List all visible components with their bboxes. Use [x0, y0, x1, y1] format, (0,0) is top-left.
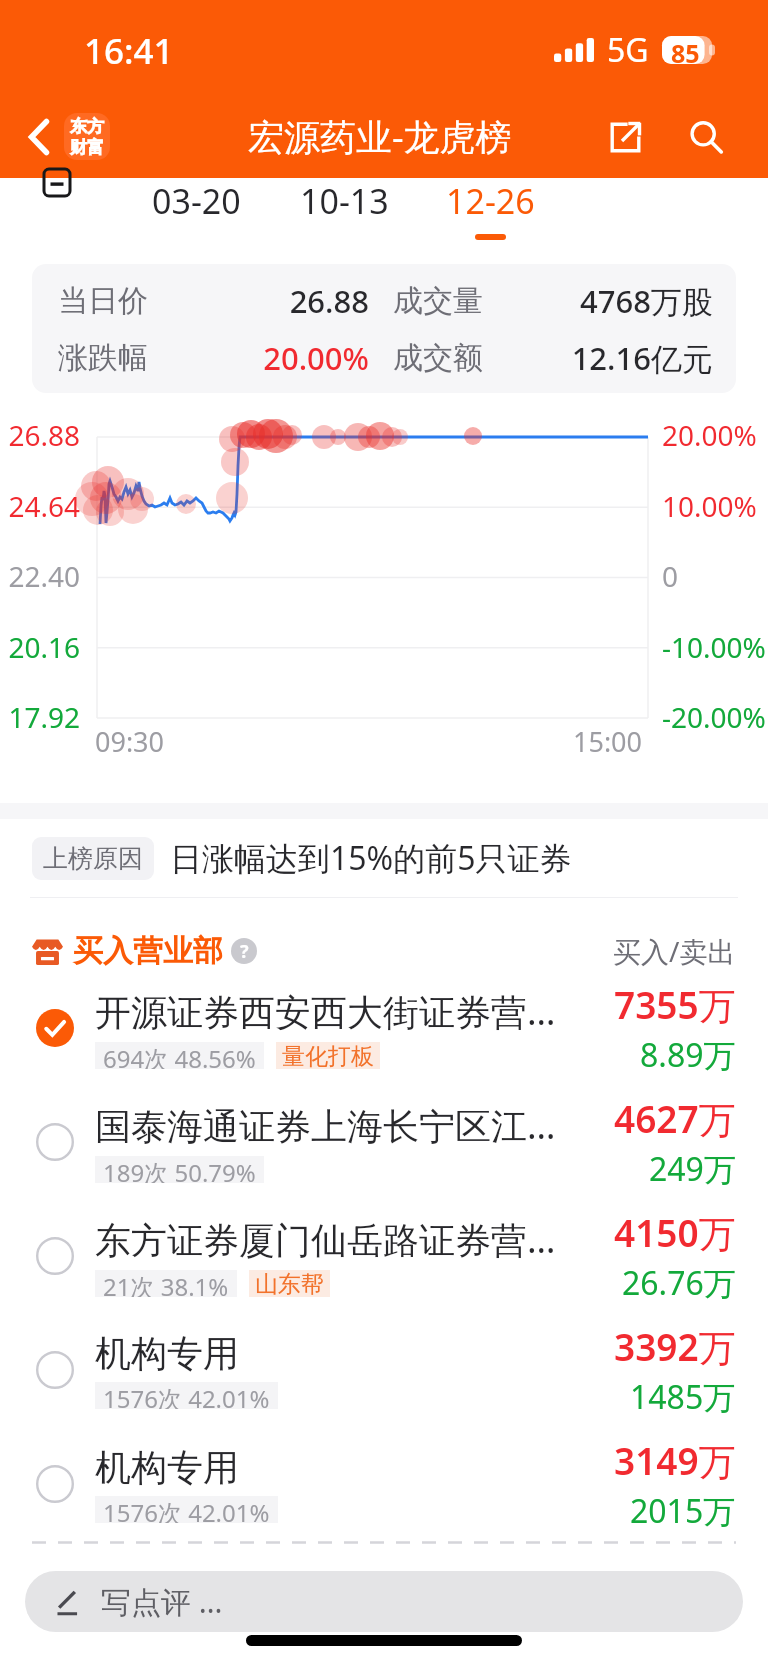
- staticText: 26.88: [148, 280, 369, 322]
- staticText: 24.64: [0, 487, 80, 525]
- button[interactable]: 03-20: [130, 178, 262, 258]
- staticText: 量化打板: [282, 1042, 374, 1069]
- staticText: 10.00%: [662, 487, 757, 525]
- button[interactable]: 东方证券厦门仙岳路证券营…: [0, 1199, 768, 1313]
- staticText: 成交额: [393, 339, 483, 377]
- staticText: 国泰海通证券上海长宁区江…: [95, 1101, 556, 1150]
- staticText: 买入/卖出: [613, 932, 736, 970]
- staticText: 买入营业部: [73, 932, 223, 970]
- staticText: 开源证券西安西大街证券营…: [95, 987, 556, 1036]
- staticText: 10-13: [300, 178, 389, 224]
- button[interactable]: 12-26: [424, 178, 556, 258]
- staticText: 涨跌幅: [58, 339, 148, 377]
- staticText: 17.92: [0, 698, 80, 736]
- staticText: 21次 38.1%: [103, 1270, 229, 1297]
- button[interactable]: East Money: [64, 113, 110, 160]
- staticText: 3392万: [614, 1321, 736, 1372]
- staticText: 1485万: [630, 1375, 736, 1419]
- staticText: 上榜原因: [43, 843, 143, 874]
- staticText: 宏源药业-龙虎榜: [248, 112, 512, 161]
- staticText: 20.00%: [148, 337, 369, 379]
- staticText: -10.00%: [662, 628, 766, 666]
- staticText: -20.00%: [662, 698, 766, 736]
- staticText: 4627万: [614, 1093, 736, 1144]
- staticText: 山东帮: [255, 1270, 324, 1297]
- staticText: 财富: [70, 137, 104, 158]
- staticText: 22.40: [0, 557, 80, 595]
- staticText: 8.89万: [640, 1033, 736, 1077]
- staticText: ?: [240, 939, 249, 964]
- staticText: 1576次 42.01%: [103, 1496, 270, 1523]
- staticText: 4150万: [614, 1207, 736, 1258]
- button[interactable]: Help: [231, 938, 257, 964]
- button[interactable]: Search: [675, 106, 737, 168]
- staticText: 20.16: [0, 628, 80, 666]
- staticText: 当日价: [58, 282, 148, 320]
- staticText: 26.88: [0, 416, 80, 454]
- staticText: 189次 50.79%: [103, 1156, 256, 1183]
- staticText: 694次 48.56%: [103, 1042, 256, 1069]
- staticText: 东方证券厦门仙岳路证券营…: [95, 1215, 556, 1264]
- staticText: 机构专用: [95, 1445, 239, 1490]
- staticText: 12.16亿元: [483, 337, 713, 379]
- staticText: 15:00: [573, 723, 643, 760]
- button[interactable]: 开源证券西安西大街证券营…: [0, 971, 768, 1085]
- button[interactable]: Back: [10, 108, 68, 166]
- button[interactable]: 写点评 …: [25, 1571, 743, 1632]
- staticText: 249万: [649, 1147, 736, 1191]
- staticText: 85: [671, 36, 700, 64]
- staticText: 写点评 …: [101, 1581, 223, 1622]
- staticText: 12-26: [446, 178, 535, 224]
- button[interactable]: Share: [594, 106, 656, 168]
- button[interactable]: 10-13: [278, 178, 410, 258]
- staticText: 日涨幅达到15%的前5只证券: [170, 836, 572, 880]
- staticText: 7355万: [614, 979, 736, 1030]
- staticText: 5G: [607, 28, 649, 72]
- staticText: 4768万股: [483, 280, 713, 322]
- staticText: 东方: [70, 116, 104, 137]
- staticText: 1576次 42.01%: [103, 1382, 270, 1409]
- button[interactable]: 国泰海通证券上海长宁区江…: [0, 1085, 768, 1199]
- staticText: 26.76万: [622, 1261, 736, 1305]
- staticText: 成交量: [393, 282, 483, 320]
- staticText: 3149万: [614, 1435, 736, 1486]
- staticText: 2015万: [630, 1489, 736, 1533]
- staticText: 0: [662, 557, 679, 595]
- staticText: 机构专用: [95, 1331, 239, 1376]
- staticText: 16:41: [84, 27, 174, 75]
- button[interactable]: 机构专用: [0, 1313, 768, 1427]
- staticText: 20.00%: [662, 416, 757, 454]
- staticText: 09:30: [95, 723, 165, 760]
- staticText: 03-20: [152, 178, 241, 224]
- button[interactable]: 机构专用: [0, 1427, 768, 1541]
